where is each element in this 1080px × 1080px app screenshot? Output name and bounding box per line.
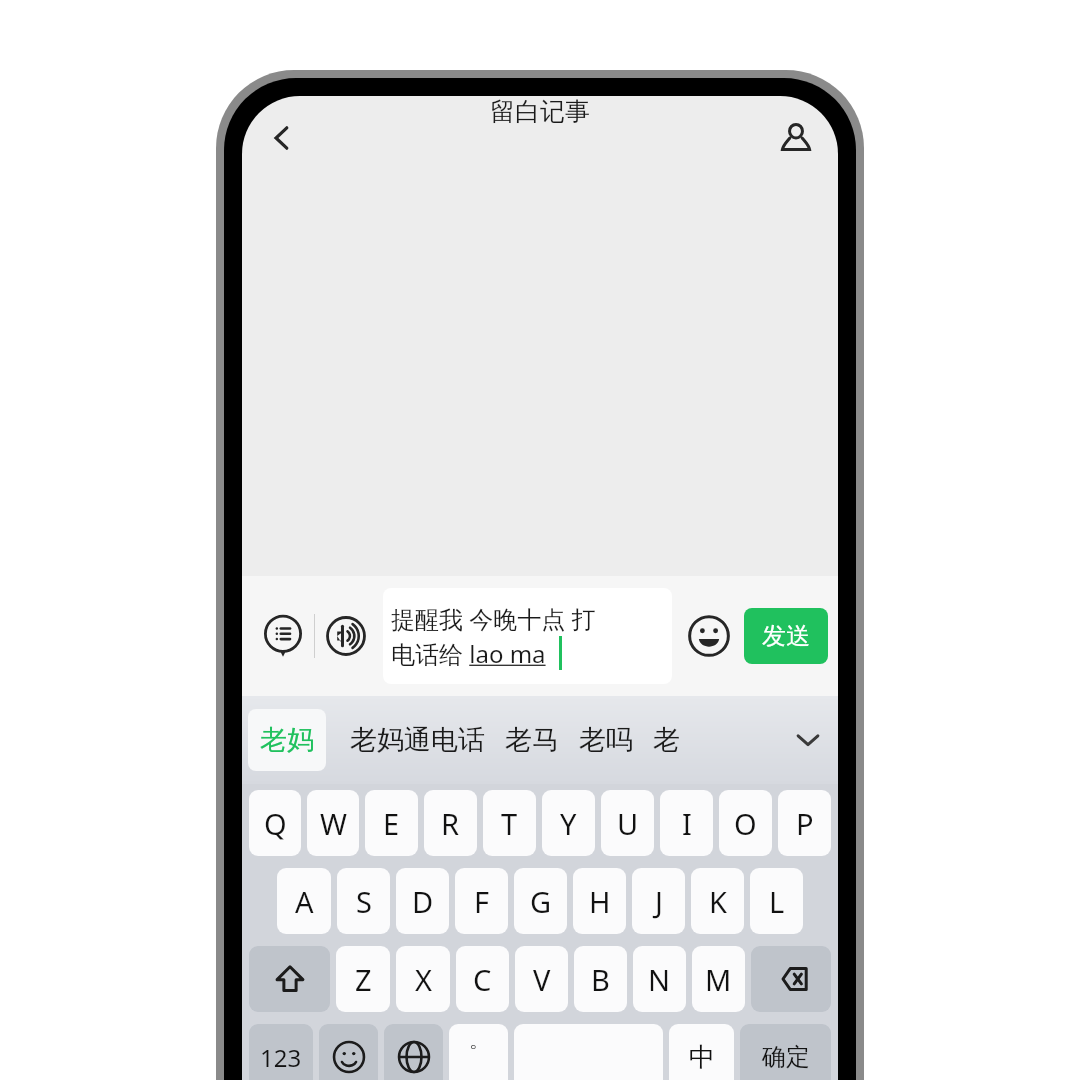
staticText: J — [655, 882, 663, 921]
staticText: M — [705, 960, 732, 999]
staticText: X — [415, 960, 432, 999]
staticText: 。 — [469, 1028, 489, 1053]
button[interactable]: 123 — [249, 1024, 313, 1080]
staticText: Y — [560, 804, 577, 843]
staticText: R — [441, 804, 460, 843]
button[interactable]: E — [365, 790, 418, 856]
button[interactable]: U — [601, 790, 654, 856]
staticText: U — [617, 804, 639, 843]
staticText: 老妈 — [260, 723, 314, 757]
staticText: 老马 — [505, 723, 559, 757]
button[interactable]: 发送 — [744, 608, 828, 664]
staticText: 确定 — [762, 1042, 810, 1072]
other: Backspace — [771, 959, 811, 999]
staticText: A — [295, 882, 314, 921]
button[interactable]: Shift — [249, 946, 330, 1012]
button[interactable]: R — [424, 790, 477, 856]
button[interactable]: L — [750, 868, 803, 934]
staticText: 老 — [653, 723, 680, 757]
staticText: C — [473, 960, 492, 999]
staticText: D — [412, 882, 434, 921]
other: Shift — [273, 962, 307, 996]
staticText: H — [589, 882, 611, 921]
button[interactable]: T — [483, 790, 536, 856]
button[interactable]: X — [396, 946, 450, 1012]
button[interactable]: V — [515, 946, 568, 1012]
staticText: 提醒我 今晚十点 打 电话给 lao ma — [391, 602, 596, 670]
button[interactable]: W — [307, 790, 359, 856]
button[interactable]: 老吗 — [569, 723, 643, 757]
staticText: P — [796, 804, 814, 843]
button[interactable]: S — [337, 868, 390, 934]
staticText: S — [356, 882, 372, 921]
button[interactable]: N — [633, 946, 686, 1012]
staticText: 发送 — [762, 621, 810, 651]
button[interactable]: Z — [336, 946, 390, 1012]
staticText: K — [709, 882, 727, 921]
button[interactable]: I — [660, 790, 713, 856]
button[interactable]: Y — [542, 790, 595, 856]
button[interactable]: Back — [250, 106, 314, 170]
button[interactable]: O — [719, 790, 772, 856]
button[interactable]: More candidates — [782, 714, 834, 766]
staticText: 留白记事 — [490, 96, 590, 127]
button[interactable]: 。 — [449, 1024, 508, 1080]
button[interactable]: K — [691, 868, 744, 934]
staticText: 123 — [260, 1041, 302, 1074]
button[interactable]: 老 — [643, 723, 690, 757]
staticText: I — [682, 804, 692, 843]
staticText: N — [648, 960, 671, 999]
button[interactable]: 老妈 — [248, 709, 326, 771]
staticText: L — [769, 882, 785, 921]
button[interactable]: Quick replies — [252, 605, 314, 667]
button[interactable]: Emoji — [680, 607, 738, 665]
button[interactable]: 提醒我 今晚十点 打 电话给 lao ma — [383, 588, 672, 684]
staticText: 老妈通电话 — [350, 723, 485, 757]
button[interactable]: C — [456, 946, 509, 1012]
staticText: G — [530, 882, 552, 921]
button[interactable]: F — [455, 868, 508, 934]
staticText: 中 — [689, 1041, 715, 1074]
button[interactable]: B — [574, 946, 627, 1012]
staticText: W — [320, 804, 347, 843]
staticText: O — [734, 804, 757, 843]
button[interactable]: Language — [384, 1024, 443, 1080]
button[interactable]: Backspace — [751, 946, 831, 1012]
button[interactable]: M — [692, 946, 745, 1012]
button[interactable]: 老妈通电话 — [340, 723, 495, 757]
button[interactable]: J — [632, 868, 685, 934]
staticText: 老吗 — [579, 723, 633, 757]
button[interactable]: P — [778, 790, 831, 856]
button[interactable]: Q — [249, 790, 301, 856]
button[interactable]: 中 — [669, 1024, 734, 1080]
staticText: V — [533, 960, 551, 999]
staticText: F — [474, 882, 490, 921]
button[interactable]: H — [573, 868, 626, 934]
button[interactable]: Emoji keyboard — [319, 1024, 378, 1080]
staticText: T — [501, 804, 518, 843]
staticText: Z — [355, 960, 372, 999]
button[interactable]: D — [396, 868, 449, 934]
button[interactable]: Contact — [764, 106, 828, 170]
button[interactable]: 确定 — [740, 1024, 831, 1080]
button[interactable]: 老马 — [495, 723, 569, 757]
button[interactable]: A — [277, 868, 331, 934]
staticText: Q — [264, 804, 287, 843]
button[interactable]: G — [514, 868, 567, 934]
staticText: B — [591, 960, 610, 999]
button[interactable]: Voice input — [315, 605, 377, 667]
staticText: E — [383, 804, 400, 843]
